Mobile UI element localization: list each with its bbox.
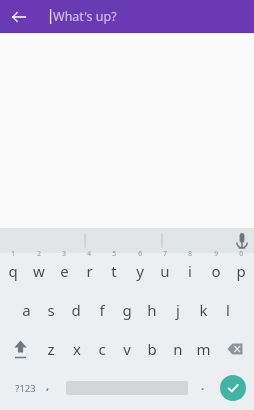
button[interactable]: z	[37, 336, 65, 362]
staticText: m	[196, 339, 211, 359]
staticText: o	[211, 261, 221, 281]
button[interactable]: j	[164, 297, 192, 323]
staticText: 2	[37, 249, 41, 258]
staticText: v	[123, 339, 131, 359]
staticText: g	[122, 300, 132, 320]
button[interactable]: t	[100, 258, 128, 284]
staticText: j	[176, 300, 180, 320]
staticText: ,	[46, 378, 50, 393]
button[interactable]: w	[25, 258, 53, 284]
button[interactable]: Backspace	[222, 335, 250, 363]
staticText: b	[147, 339, 157, 359]
staticText: s	[47, 300, 55, 320]
button[interactable]: r	[75, 258, 103, 284]
staticText: y	[136, 261, 144, 281]
staticText: 4	[87, 249, 91, 258]
staticText: p	[236, 261, 246, 281]
button[interactable]: f	[88, 297, 116, 323]
staticText: What's up?	[53, 8, 117, 25]
staticText: a	[22, 300, 31, 320]
staticText: z	[47, 339, 55, 359]
button[interactable]: Shift	[7, 333, 34, 365]
staticText: 3	[62, 249, 66, 258]
button[interactable]: x	[63, 336, 91, 362]
staticText: x	[73, 339, 81, 359]
staticText: t	[111, 261, 117, 281]
button[interactable]: u	[151, 258, 179, 284]
button[interactable]: v	[113, 336, 141, 362]
staticText: 8	[188, 249, 192, 258]
button[interactable]: Send	[220, 375, 246, 401]
staticText: 7	[163, 249, 167, 258]
button[interactable]: .	[192, 374, 214, 402]
button[interactable]: s	[37, 297, 65, 323]
button[interactable]: b	[138, 336, 166, 362]
staticText: f	[99, 300, 105, 320]
staticText: w	[33, 261, 45, 281]
button[interactable]: p	[227, 258, 254, 284]
staticText: 1	[11, 249, 15, 258]
staticText: 5	[112, 249, 116, 258]
button[interactable]: ,	[36, 374, 60, 402]
button[interactable]: o	[202, 258, 230, 284]
staticText: 6	[138, 249, 142, 258]
button[interactable]: c	[88, 336, 116, 362]
button[interactable]: q	[0, 258, 27, 284]
staticText: i	[188, 261, 192, 281]
staticText: .	[201, 378, 205, 393]
button[interactable]: n	[164, 336, 192, 362]
staticText: c	[98, 339, 106, 359]
button[interactable]: k	[189, 297, 217, 323]
staticText: 9	[214, 249, 218, 258]
button[interactable]: g	[113, 297, 141, 323]
staticText: d	[71, 300, 81, 320]
button[interactable]: d	[62, 297, 90, 323]
button[interactable]: ?123	[4, 374, 46, 402]
staticText: r	[86, 261, 93, 281]
button[interactable]: Voice input	[230, 228, 254, 253]
staticText: h	[147, 300, 157, 320]
staticText: e	[60, 261, 69, 281]
staticText: u	[160, 261, 170, 281]
staticText: n	[173, 339, 183, 359]
staticText: l	[226, 300, 230, 320]
button[interactable]: What's up?	[50, 0, 254, 33]
staticText: k	[199, 300, 208, 320]
button[interactable]: m	[189, 336, 217, 362]
staticText: ?123	[15, 382, 36, 395]
button[interactable]: Back	[8, 6, 30, 28]
staticText: q	[8, 261, 18, 281]
button[interactable]: i	[176, 258, 204, 284]
button[interactable]: y	[126, 258, 154, 284]
button[interactable]: e	[50, 258, 78, 284]
button[interactable]: a	[12, 297, 40, 323]
staticText: 0	[239, 249, 243, 258]
button[interactable]: l	[214, 297, 242, 323]
button[interactable]: h	[138, 297, 166, 323]
